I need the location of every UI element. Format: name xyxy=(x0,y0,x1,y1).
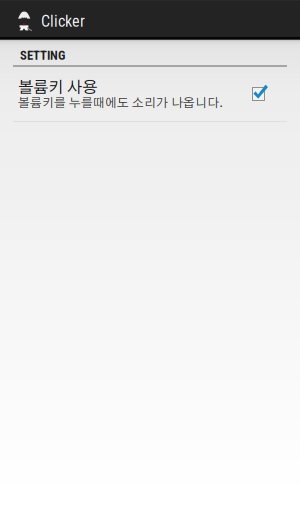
button[interactable]: 볼륨키 사용 xyxy=(0,68,300,121)
staticText: 볼륨키 사용 xyxy=(18,80,97,96)
staticText: 볼륨키를 누를때에도 소리가 나옵니다. xyxy=(18,97,223,109)
button[interactable]: Clicker xyxy=(0,0,110,38)
staticText: SETTING xyxy=(20,48,65,63)
staticText: Clicker xyxy=(41,12,85,31)
